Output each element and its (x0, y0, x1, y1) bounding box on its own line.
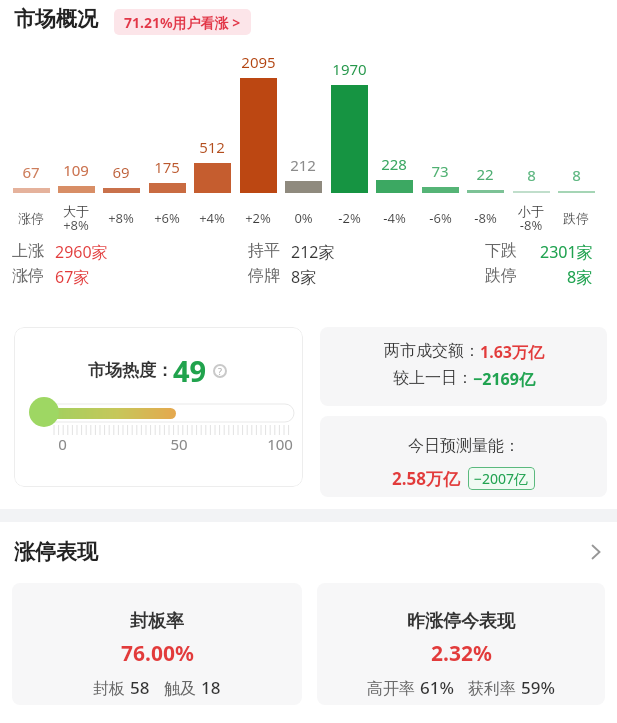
staticText: 涨停表现 (14, 539, 98, 565)
staticText: +2% (245, 209, 271, 227)
staticText: 2095 (241, 52, 276, 72)
staticText: 50 (170, 434, 188, 454)
staticText: 涨停 (12, 266, 44, 286)
staticText: 22 (476, 164, 494, 184)
staticText: 18 (201, 676, 221, 699)
staticText: 1970 (332, 59, 367, 79)
staticText: 175 (154, 157, 180, 177)
button[interactable]: 市场热度： (14, 327, 303, 487)
staticText: 69 (112, 162, 130, 182)
staticText: -4% (383, 209, 406, 227)
staticText: 67家 (55, 266, 90, 288)
staticText: 涨停 (18, 210, 44, 226)
staticText: 100 (267, 434, 293, 454)
staticText: 较上一日： (393, 368, 473, 388)
staticText: −2007亿 (474, 469, 529, 488)
staticText: 封板率 (130, 610, 184, 633)
staticText: 76.00% (121, 639, 194, 668)
staticText: 2.58万亿 (392, 467, 460, 490)
staticText: 封板 (93, 677, 130, 699)
staticText: 8 (572, 165, 581, 185)
staticText: 228 (381, 154, 407, 174)
staticText: 512 (199, 137, 225, 157)
staticText: 小于 -8% (518, 203, 544, 234)
staticText: 67 (22, 162, 40, 182)
staticText: 49 (173, 351, 207, 390)
staticText: 市场热度： (88, 360, 173, 381)
staticText: 上涨 (12, 241, 44, 261)
staticText: 2.32% (431, 639, 492, 668)
staticText: ? (218, 365, 222, 377)
staticText: -2% (338, 209, 361, 227)
staticText: 跌停 (563, 210, 589, 226)
button[interactable]: 两市成交额： (320, 327, 607, 406)
staticText: +4% (199, 209, 225, 227)
button[interactable]: 涨停表现 (0, 536, 617, 568)
staticText: 0% (294, 209, 313, 227)
button[interactable]: 71.21%用户看涨 > (114, 9, 251, 35)
staticText: 2960家 (55, 241, 108, 263)
staticText: 持平 (248, 241, 280, 261)
staticText: −2169亿 (473, 368, 535, 390)
staticText: +6% (154, 209, 180, 227)
staticText: 212家 (291, 241, 335, 263)
staticText: 下跌 (485, 241, 517, 261)
staticText: 8家 (291, 266, 317, 288)
staticText: 停牌 (248, 266, 280, 286)
staticText: -8% (474, 209, 497, 227)
staticText: 58 (130, 676, 150, 699)
button[interactable]: 昨涨停今表现 (317, 583, 605, 705)
staticText: 1.63万亿 (480, 341, 544, 363)
staticText: 8 (527, 165, 536, 185)
staticText: 今日预测量能： (408, 436, 520, 456)
staticText: 59% (521, 676, 555, 699)
staticText: 2301家 (540, 241, 593, 263)
staticText: 212 (290, 155, 316, 175)
staticText: 73 (431, 161, 449, 181)
staticText: 获利率 (468, 677, 521, 699)
staticText: 跌停 (485, 266, 517, 286)
staticText: 大于 +8% (63, 203, 89, 234)
staticText: 高开率 (367, 677, 420, 699)
staticText: 109 (63, 160, 89, 180)
staticText: 市场概况 (14, 6, 98, 32)
button[interactable]: 今日预测量能： (320, 416, 607, 497)
staticText: +8% (108, 209, 134, 227)
button[interactable]: 封板率 (12, 583, 302, 705)
staticText: -6% (429, 209, 452, 227)
staticText: 71.21%用户看涨 > (124, 13, 241, 32)
staticText: 0 (58, 434, 67, 454)
staticText: 8家 (567, 266, 593, 288)
staticText: 触及 (164, 677, 201, 699)
staticText: 两市成交额： (384, 341, 480, 361)
staticText: 昨涨停今表现 (407, 610, 515, 633)
staticText: 61% (420, 676, 454, 699)
